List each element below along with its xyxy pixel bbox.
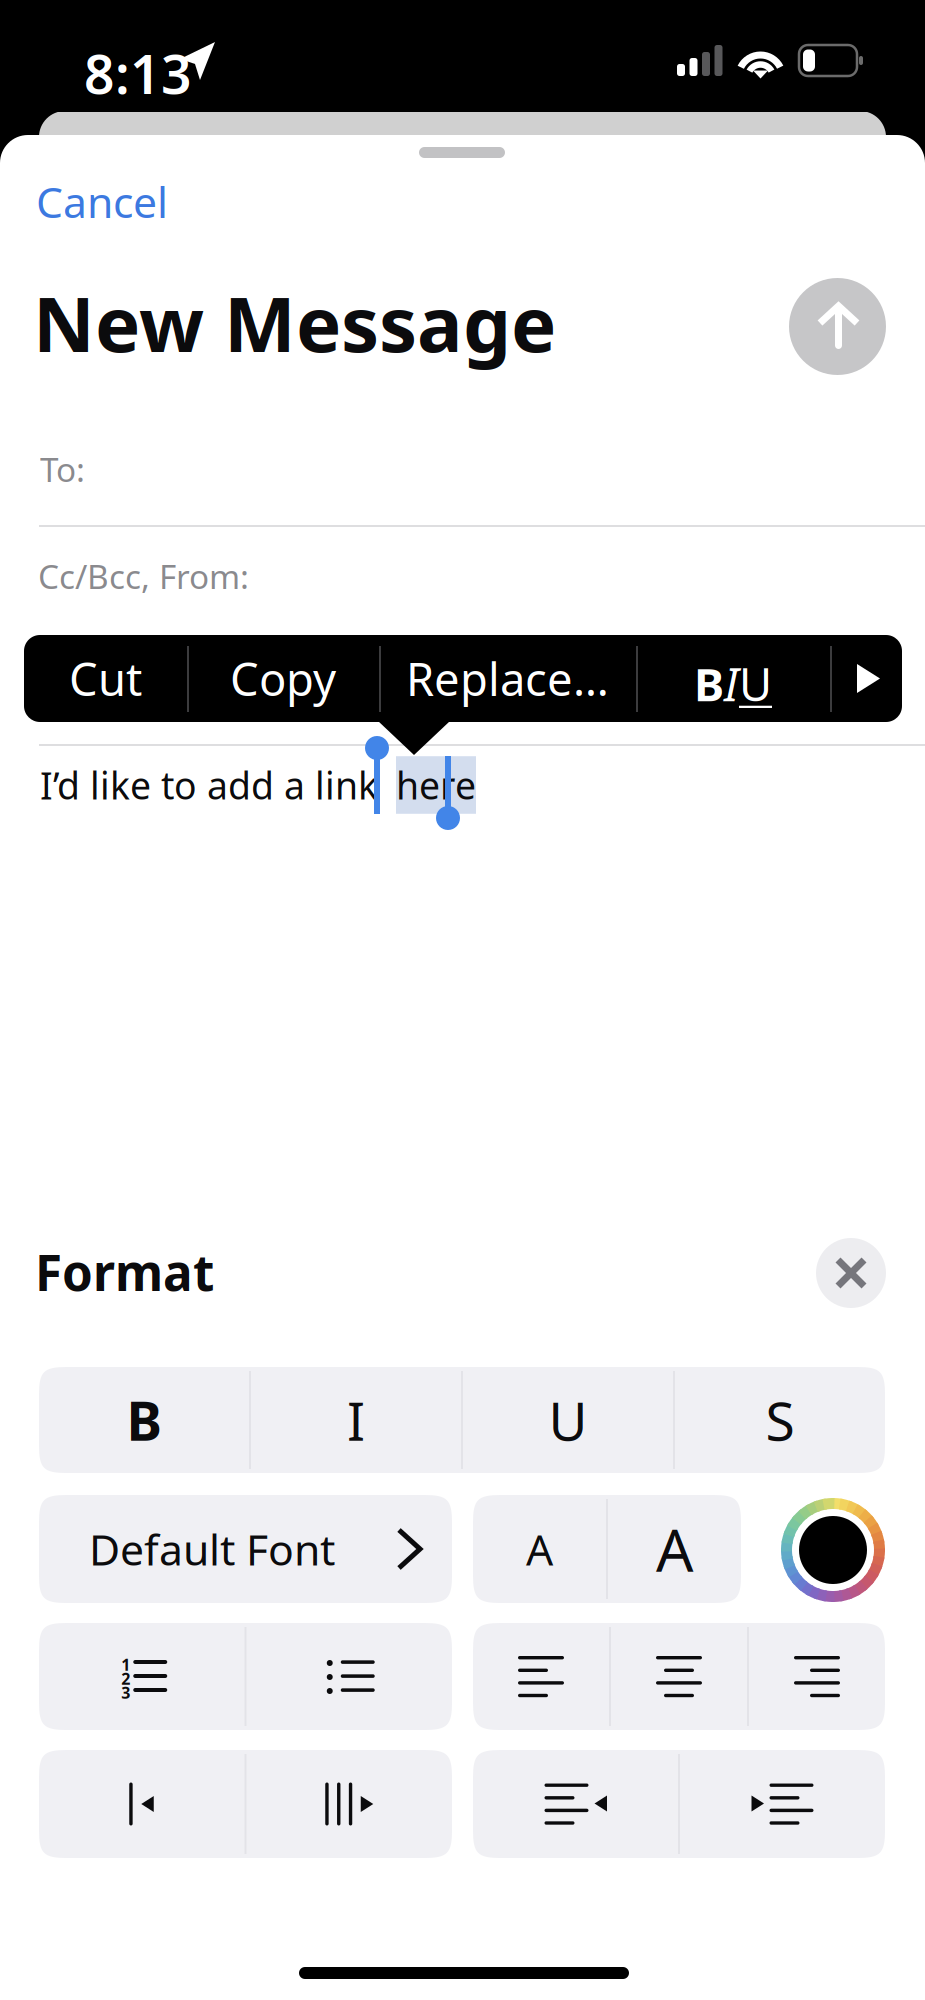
button[interactable]: Close (816, 1238, 886, 1308)
button[interactable]: Decrease indent (39, 1750, 244, 1858)
staticText: Default Font (89, 1521, 335, 1577)
staticText: I (724, 653, 739, 714)
button[interactable]: Align left (473, 1623, 609, 1730)
button[interactable]: Copy (187, 635, 379, 722)
staticText: I (347, 1385, 365, 1455)
staticText: To: (40, 447, 85, 491)
staticText: Cancel (36, 173, 168, 225)
staticText: Format (35, 1239, 214, 1301)
staticText: 3 (121, 1682, 130, 1696)
staticText: U (739, 653, 772, 714)
button[interactable]: Align centre (611, 1623, 747, 1730)
button[interactable]: Text colour (781, 1498, 885, 1602)
button[interactable]: Numbered list (39, 1623, 244, 1730)
button[interactable]: Bold Italic Underline (636, 635, 830, 722)
staticText: New Message (33, 272, 556, 362)
button[interactable]: Indent (680, 1750, 885, 1858)
button[interactable]: Default Font (39, 1495, 452, 1603)
staticText: Cc/Bcc, From: (38, 554, 249, 598)
button[interactable]: Cut (24, 635, 187, 722)
staticText: B (126, 1385, 161, 1455)
button[interactable]: Bulleted list (246, 1623, 452, 1730)
staticText: I’d like to add a link (40, 760, 378, 810)
staticText: A (526, 1521, 553, 1577)
button[interactable]: More (830, 635, 902, 722)
staticText: B (694, 653, 724, 714)
button[interactable]: B (39, 1367, 249, 1473)
button[interactable]: Cancel (36, 173, 236, 225)
button[interactable]: I (251, 1367, 461, 1473)
button[interactable]: Replace… (379, 635, 636, 722)
button[interactable]: Align right (749, 1623, 885, 1730)
staticText: 8:13 (84, 38, 192, 88)
button[interactable]: U (463, 1367, 673, 1473)
staticText: A (656, 1510, 693, 1588)
button[interactable]: S (675, 1367, 885, 1473)
staticText: 1 (121, 1654, 130, 1668)
staticText: Replace… (406, 648, 609, 709)
button[interactable]: Outdent (473, 1750, 678, 1858)
staticText: S (765, 1385, 794, 1455)
staticText: 2 (121, 1668, 130, 1682)
staticText: Cut (69, 648, 142, 709)
button[interactable]: Send (789, 278, 886, 375)
button[interactable]: A (473, 1495, 606, 1603)
button[interactable]: Increase indent (246, 1750, 452, 1858)
staticText: U (548, 1385, 587, 1455)
staticText: here (396, 760, 476, 810)
button[interactable]: A (608, 1495, 741, 1603)
staticText: Copy (230, 648, 336, 709)
